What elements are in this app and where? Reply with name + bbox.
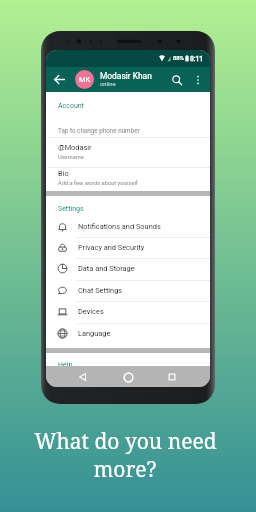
button[interactable]: Help xyxy=(46,353,210,366)
staticText: 8:11 xyxy=(190,55,204,63)
button[interactable]: More options xyxy=(191,73,205,87)
staticText: Language xyxy=(78,329,111,338)
button[interactable]: Back xyxy=(52,72,67,87)
button[interactable]: Recents xyxy=(163,368,181,386)
staticText: Chat Settings xyxy=(78,286,123,295)
button[interactable]: Chat Settings xyxy=(46,280,210,301)
button[interactable]: Search xyxy=(169,72,185,88)
staticText: Bio xyxy=(58,169,69,178)
staticText: Username xyxy=(58,154,84,161)
staticText: Devices xyxy=(78,307,104,316)
button[interactable]: Back xyxy=(74,368,92,386)
button[interactable]: Data and Storage xyxy=(46,258,210,279)
button[interactable] xyxy=(46,168,210,191)
staticText: Data and Storage xyxy=(78,264,135,273)
staticText: Add a few words about yourself xyxy=(58,180,138,187)
staticText: Modasir Khan xyxy=(100,71,152,81)
button[interactable] xyxy=(46,138,210,167)
button[interactable]: Home xyxy=(119,368,137,386)
staticText: Notifications and Sounds xyxy=(78,222,161,231)
staticText: @Modasir xyxy=(58,143,92,152)
button[interactable]: Privacy and Security xyxy=(46,237,210,258)
staticText: Help xyxy=(58,361,73,369)
button[interactable]: Devices xyxy=(46,301,210,322)
button[interactable]: Notifications and Sounds xyxy=(46,216,210,237)
staticText: Settings xyxy=(58,205,84,213)
button[interactable]: Language xyxy=(46,323,210,344)
staticText: more? xyxy=(93,455,157,484)
staticText: MK xyxy=(79,75,91,84)
staticText: 88% xyxy=(173,55,184,62)
staticText: Account xyxy=(58,102,84,110)
button[interactable] xyxy=(46,122,210,152)
staticText: What do you need xyxy=(34,427,217,456)
staticText: Tap to change phone number xyxy=(58,127,140,134)
staticText: online xyxy=(100,81,116,88)
staticText: Privacy and Security xyxy=(78,243,145,252)
